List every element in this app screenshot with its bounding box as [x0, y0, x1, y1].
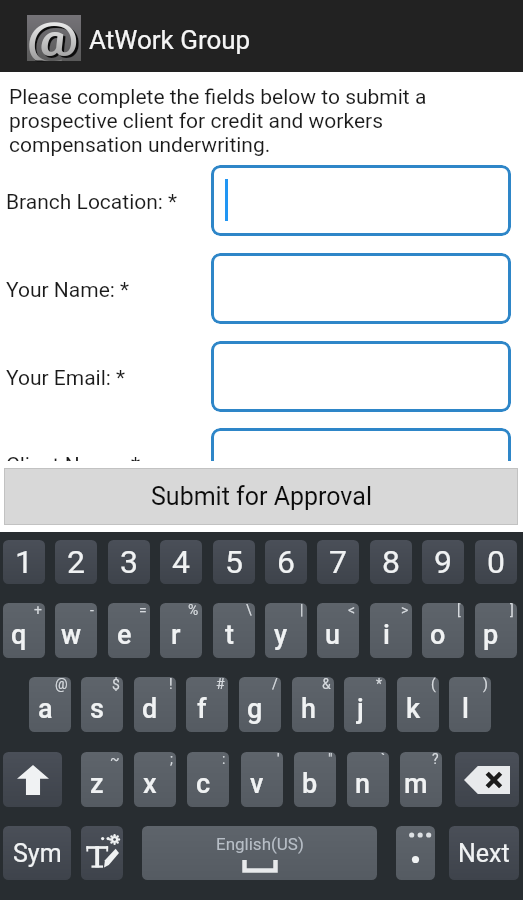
button[interactable]: Backspace [455, 752, 519, 807]
staticText: 2 [67, 543, 85, 581]
button[interactable] [211, 341, 511, 412]
staticText: & [322, 677, 331, 692]
button[interactable]: j [344, 677, 386, 732]
button[interactable]: d [134, 677, 176, 732]
staticText: ' [277, 752, 280, 767]
button[interactable]: e [108, 603, 150, 658]
staticText: % [188, 603, 199, 618]
staticText: Your Name: * [6, 278, 130, 303]
staticText: l [462, 693, 469, 725]
button[interactable]: Submit for Approval [4, 468, 518, 525]
staticText: z [90, 768, 104, 800]
button[interactable]: c [187, 752, 229, 807]
button[interactable]: 3 [108, 540, 150, 584]
staticText: ` [381, 752, 386, 767]
button[interactable]: AtWork Group logo [27, 15, 81, 61]
button[interactable]: 2 [55, 540, 97, 584]
staticText: Sym [13, 839, 62, 868]
staticText: / [272, 677, 278, 692]
button[interactable]: Space [142, 826, 377, 880]
button[interactable]: g [239, 677, 281, 732]
staticText: k [406, 693, 421, 725]
button[interactable]: q [3, 603, 45, 658]
staticText: y [274, 619, 288, 651]
staticText: : [222, 752, 226, 767]
button[interactable]: b [294, 752, 336, 807]
button[interactable]: o [422, 603, 464, 658]
button[interactable]: y [265, 603, 307, 658]
staticText: b [302, 768, 318, 800]
staticText: ( [431, 677, 436, 692]
button[interactable]: k [397, 677, 439, 732]
staticText: @ [27, 13, 80, 60]
button[interactable]: Shift [3, 752, 62, 807]
button[interactable]: Sym [3, 826, 71, 880]
staticText: 5 [225, 543, 243, 581]
staticText: n [355, 768, 371, 800]
staticText: 4 [172, 543, 190, 581]
button[interactable]: r [160, 603, 202, 658]
staticText: @ [55, 677, 68, 692]
button[interactable]: m [400, 752, 442, 807]
button[interactable]: Input settings [81, 826, 123, 880]
button[interactable]: 5 [213, 540, 255, 584]
button[interactable] [211, 165, 511, 236]
staticText: AtWork Group [89, 25, 251, 55]
staticText: d [142, 693, 158, 725]
staticText: 9 [434, 543, 452, 581]
button[interactable]: v [241, 752, 283, 807]
staticText: 8 [382, 543, 400, 581]
button[interactable]: i [370, 603, 412, 658]
button[interactable]: 6 [265, 540, 307, 584]
staticText: ) [483, 677, 488, 692]
staticText: t [225, 619, 234, 651]
button[interactable]: p [475, 603, 517, 658]
button[interactable]: n [347, 752, 389, 807]
button[interactable]: x [134, 752, 176, 807]
staticText: Submit for Approval [151, 482, 372, 511]
staticText: 1 [15, 543, 33, 581]
button[interactable]: 1 [3, 540, 45, 584]
button[interactable]: t [213, 603, 255, 658]
staticText: r [171, 619, 181, 651]
button[interactable]: Next [449, 826, 519, 880]
staticText: | [300, 603, 304, 618]
staticText: @ [28, 14, 82, 61]
staticText: ~ [110, 752, 120, 767]
button[interactable]: 8 [370, 540, 412, 584]
button[interactable]: 0 [475, 540, 517, 584]
button[interactable]: s [81, 677, 123, 732]
button[interactable] [211, 253, 511, 324]
button[interactable]: u [317, 603, 359, 658]
staticText: 3 [120, 543, 138, 581]
staticText: English(US) [216, 834, 304, 854]
button[interactable]: z [81, 752, 123, 807]
button[interactable] [211, 428, 511, 461]
staticText: j [357, 693, 364, 725]
button[interactable]: 4 [160, 540, 202, 584]
staticText: q [11, 619, 27, 651]
button[interactable]: a [29, 677, 71, 732]
staticText: v [250, 768, 264, 800]
staticText: e [117, 619, 132, 651]
staticText: ] [510, 603, 514, 618]
staticText: Your Email: * [6, 366, 126, 391]
staticText: h [301, 693, 316, 725]
staticText: Branch Location: * [6, 190, 178, 215]
staticText: - [90, 603, 94, 618]
staticText: ! [169, 677, 173, 692]
staticText: $ [112, 677, 120, 692]
staticText: f [197, 693, 207, 725]
staticText: \ [246, 603, 252, 618]
button[interactable]: h [292, 677, 334, 732]
staticText: c [196, 768, 211, 800]
button[interactable]: 7 [317, 540, 359, 584]
staticText: + [34, 603, 42, 618]
button[interactable]: Period [396, 826, 435, 880]
staticText: > [401, 603, 409, 618]
button[interactable]: l [449, 677, 491, 732]
button[interactable]: 9 [422, 540, 464, 584]
button[interactable]: w [55, 603, 97, 658]
staticText: m [404, 768, 428, 800]
button[interactable]: f [186, 677, 228, 732]
